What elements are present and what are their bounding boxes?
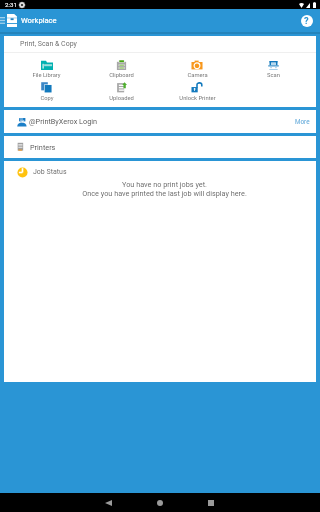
staticText: 2:31 <box>5 1 17 8</box>
staticText: Copy <box>40 95 54 102</box>
button[interactable]: Recents <box>196 493 226 512</box>
button[interactable]: Help <box>300 14 313 27</box>
staticText: Clipboard <box>109 72 134 79</box>
staticText: Printers <box>30 143 56 152</box>
button[interactable]: @PrintByXerox Login <box>4 110 316 133</box>
button[interactable]: Scan <box>235 60 311 79</box>
staticText: @PrintByXerox Login <box>29 117 98 126</box>
button[interactable]: Home <box>145 493 175 512</box>
button[interactable]: Camera <box>159 60 235 79</box>
button[interactable]: Unlock Printer <box>159 82 235 102</box>
button[interactable]: Printers <box>4 136 316 158</box>
staticText: File Library <box>32 72 61 79</box>
staticText: Scan <box>267 72 280 79</box>
staticText: Workplace <box>21 16 57 25</box>
staticText: Job Status <box>33 168 67 176</box>
staticText: Once you have printed the last job will … <box>82 189 247 198</box>
staticText: More <box>295 118 310 125</box>
button[interactable]: Menu <box>0 9 7 32</box>
staticText: Print, Scan & Copy <box>20 40 77 48</box>
staticText: ? <box>304 15 309 26</box>
button[interactable]: Uploaded <box>84 82 159 102</box>
button[interactable]: File Library <box>9 60 84 79</box>
button[interactable]: Back <box>93 493 123 512</box>
staticText: Uploaded <box>109 95 134 102</box>
staticText: You have no print jobs yet. <box>122 180 207 189</box>
button[interactable]: Copy <box>9 82 84 102</box>
button[interactable]: Clipboard <box>84 60 159 79</box>
staticText: Unlock Printer <box>179 95 216 102</box>
staticText: Camera <box>187 72 208 79</box>
